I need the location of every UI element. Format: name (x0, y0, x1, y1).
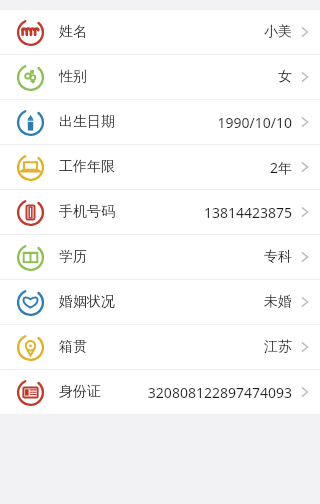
staticText: 箱贯 (59, 338, 87, 356)
button[interactable]: 箱贯 (0, 325, 320, 369)
staticText: 专科 (264, 248, 292, 266)
button[interactable]: 婚姻状况 (0, 280, 320, 324)
staticText: 1990/10/10 (217, 113, 292, 132)
staticText: 学历 (59, 248, 87, 266)
button[interactable]: 工作年限 (0, 145, 320, 189)
staticText: 工作年限 (59, 158, 115, 176)
staticText: 江苏 (264, 338, 292, 356)
staticText: 2年 (269, 158, 292, 177)
button[interactable]: 性别 (0, 55, 320, 99)
staticText: 出生日期 (59, 113, 115, 131)
button[interactable]: 姓名 (0, 10, 320, 54)
staticText: 手机号码 (59, 203, 115, 221)
staticText: 姓名 (59, 23, 87, 41)
staticText: 性别 (59, 68, 87, 86)
staticText: 婚姻状况 (59, 293, 115, 311)
button[interactable]: 手机号码 (0, 190, 320, 234)
staticText: 13814423875 (203, 203, 292, 222)
staticText: 女 (278, 68, 292, 86)
staticText: 未婚 (264, 293, 292, 311)
button[interactable]: 学历 (0, 235, 320, 279)
staticText: 320808122897474093 (147, 383, 292, 402)
staticText: 小美 (264, 23, 292, 41)
button[interactable]: 身份证 (0, 370, 320, 414)
staticText: 身份证 (59, 383, 101, 401)
button[interactable]: 出生日期 (0, 100, 320, 144)
